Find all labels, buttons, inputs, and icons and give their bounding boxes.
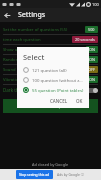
button[interactable]: Vibration feedback — [3, 75, 98, 84]
staticText: Show answer after each — [3, 47, 84, 53]
button[interactable]: 100 question (without zero) — [23, 77, 85, 83]
staticText: 55 question (Point tables) — [32, 87, 84, 93]
staticText: Set the number of questions (55) — [3, 27, 83, 33]
staticText: Random order of questions — [3, 57, 84, 63]
button[interactable]: CANCEL — [48, 97, 70, 105]
staticText: Stop seeing this ad — [19, 172, 50, 177]
staticText: Select — [23, 52, 45, 62]
button[interactable]: Sound effects — [3, 65, 98, 74]
button[interactable]: Show answer after each — [3, 45, 98, 54]
staticText: 100 — [92, 2, 99, 7]
staticText: SAVE — [39, 102, 54, 110]
staticText: Ad closed by Google — [32, 162, 69, 167]
staticText: Vibration feedback — [3, 77, 84, 83]
button[interactable]: OK — [74, 97, 85, 105]
staticText: ON — [89, 47, 95, 52]
staticText: OK — [76, 98, 83, 104]
staticText: Settings — [18, 10, 46, 20]
staticText: CANCEL — [50, 98, 68, 104]
staticText: ON — [89, 77, 95, 82]
staticText: Dark theme — [3, 87, 87, 93]
staticText: Sound effects — [3, 67, 83, 73]
staticText: Ads by Google ⓘ — [57, 172, 85, 177]
button[interactable]: Back — [0, 8, 14, 22]
staticText: time each question — [3, 37, 70, 43]
button[interactable]: Random order of questions — [3, 55, 98, 64]
staticText: 121 question (all) — [32, 67, 67, 73]
button[interactable]: 121 question (all) — [23, 67, 85, 73]
button[interactable]: time each question — [3, 35, 98, 44]
button[interactable]: 55 question (Point tables) — [23, 87, 85, 93]
button[interactable]: SAVE — [3, 99, 98, 113]
button[interactable]: Ads by Google ⓘ — [56, 172, 86, 177]
staticText: 100 question (without zero) — [32, 77, 85, 83]
staticText: 500 — [88, 27, 95, 32]
button[interactable]: Dark theme — [3, 87, 98, 93]
button[interactable]: Set the number of questions (55) — [3, 25, 98, 34]
button[interactable]: Stop seeing this ad — [16, 170, 53, 179]
staticText: ON — [89, 57, 95, 62]
staticText: 20 seconds — [75, 37, 95, 42]
staticText: OFF — [88, 67, 95, 72]
